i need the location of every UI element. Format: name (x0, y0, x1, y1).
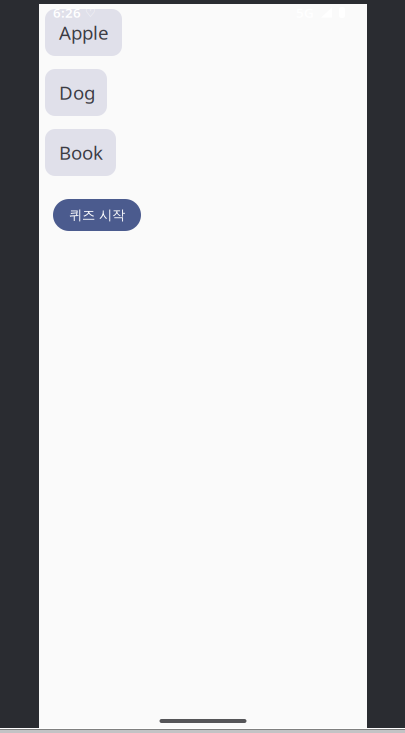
button[interactable]: 퀴즈 시작 (53, 199, 141, 231)
button[interactable]: Apple (45, 9, 122, 56)
staticText: 퀴즈 시작 (69, 207, 125, 223)
staticText: Dog (59, 80, 95, 105)
button[interactable]: Dog (45, 69, 107, 116)
staticText: Apple (59, 20, 109, 45)
staticText: ♡ (85, 6, 96, 19)
button[interactable]: Book (45, 129, 116, 176)
staticText: Book (59, 140, 103, 165)
staticText: 6:26 (53, 4, 81, 21)
